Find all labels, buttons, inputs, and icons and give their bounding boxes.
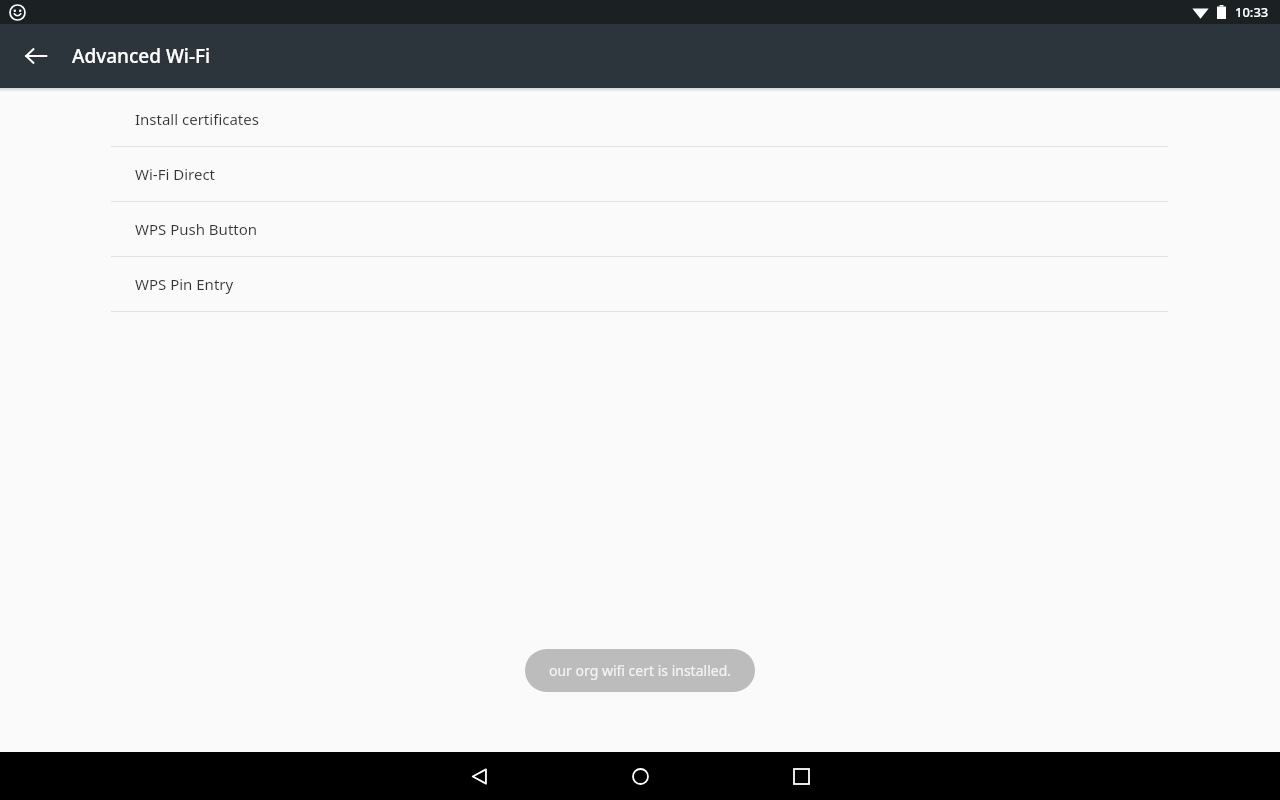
staticText: our org wifi cert is installed. [549,661,731,680]
staticText: WPS Pin Entry [135,274,234,294]
staticText: Install certificates [135,109,259,129]
staticText: Wi-Fi Direct [135,164,215,184]
staticText: Advanced Wi-Fi [72,43,211,69]
button[interactable]: Navigate up [12,32,60,80]
button[interactable]: WPS Push Button [0,202,1280,257]
button[interactable]: Home [616,752,664,800]
button[interactable]: WPS Pin Entry [0,257,1280,312]
staticText: 10:33 [1235,3,1269,21]
button[interactable]: Wi-Fi Direct [0,147,1280,202]
other: Notification [9,4,26,21]
staticText: WPS Push Button [135,219,258,239]
button[interactable]: Back [455,752,503,800]
button[interactable]: Recent apps [777,752,825,800]
button[interactable]: Install certificates [0,92,1280,147]
